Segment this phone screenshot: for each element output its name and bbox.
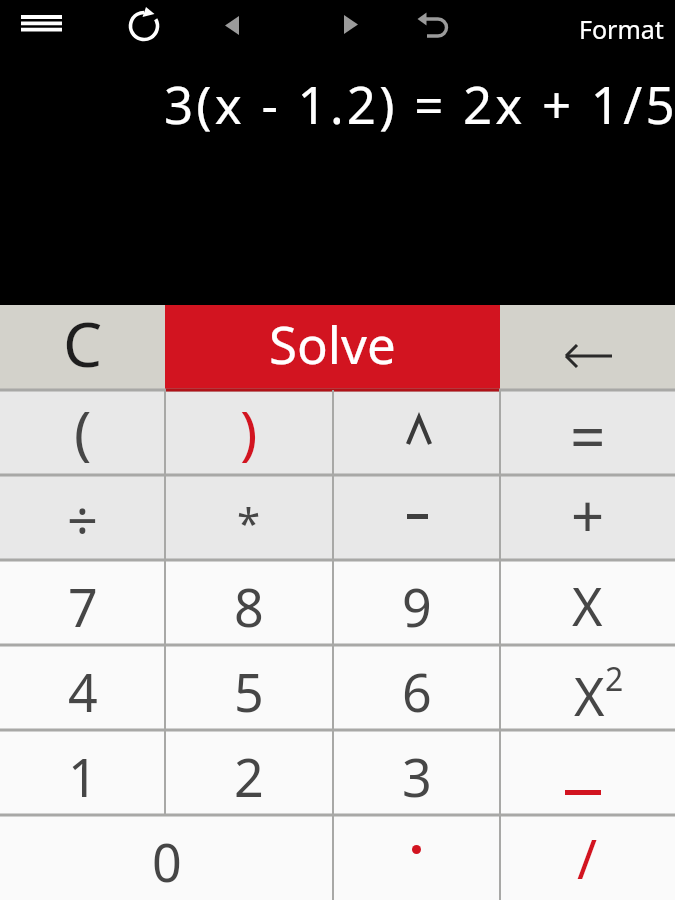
button[interactable] [126,7,163,44]
button[interactable]: X [500,645,675,730]
button[interactable]: 0 [0,815,333,900]
staticText: 0 [152,826,182,897]
staticText: 3 [402,741,432,812]
button[interactable]: 9 [333,560,500,645]
staticText: 1 [68,741,98,812]
staticText: ( [74,392,92,471]
button[interactable]: / [500,815,675,900]
staticText: * [237,494,261,551]
button[interactable]: 7 [0,560,165,645]
button[interactable] [500,730,675,815]
staticText: = [570,394,606,478]
button[interactable] [412,6,452,46]
button[interactable]: Solve [165,305,500,390]
button[interactable]: 2 [165,730,333,815]
button[interactable] [218,12,246,40]
staticText: 9 [402,571,432,642]
staticText: 7 [68,571,98,642]
staticText: 4 [68,656,98,727]
staticText: X [574,660,605,731]
button[interactable]: Format [579,12,664,46]
button[interactable] [14,9,70,39]
staticText: ÷ [67,483,98,557]
button[interactable]: 6 [333,645,500,730]
staticText: + [571,476,605,555]
staticText: 8 [234,571,264,642]
button[interactable]: 1 [0,730,165,815]
button[interactable] [500,305,675,390]
staticText: C [63,301,103,385]
staticText: 5 [234,656,264,727]
button[interactable]: ( [0,390,165,475]
button[interactable]: 5 [165,645,333,730]
staticText: Format [579,12,664,46]
button[interactable]: 4 [0,645,165,730]
staticText: 6 [402,656,432,727]
button[interactable]: 3 [333,730,500,815]
button[interactable]: X [500,560,675,645]
staticText: X [572,570,603,641]
button[interactable] [333,390,500,475]
button[interactable]: 8 [165,560,333,645]
staticText: 3(x - 1.2) = 2x + 1/5 [164,69,675,138]
button[interactable]: = [500,390,675,475]
button[interactable] [333,815,500,900]
button[interactable] [337,11,365,39]
button[interactable]: ) [165,390,333,475]
button[interactable] [333,475,500,560]
staticText: Solve [269,309,396,378]
staticText: / [577,821,598,895]
button[interactable]: ÷ [0,475,165,560]
staticText: 2 [234,741,264,812]
staticText: 2 [605,657,624,701]
button[interactable]: + [500,475,675,560]
button[interactable]: * [165,475,333,560]
staticText: ) [240,392,258,471]
button[interactable]: C [0,305,165,390]
